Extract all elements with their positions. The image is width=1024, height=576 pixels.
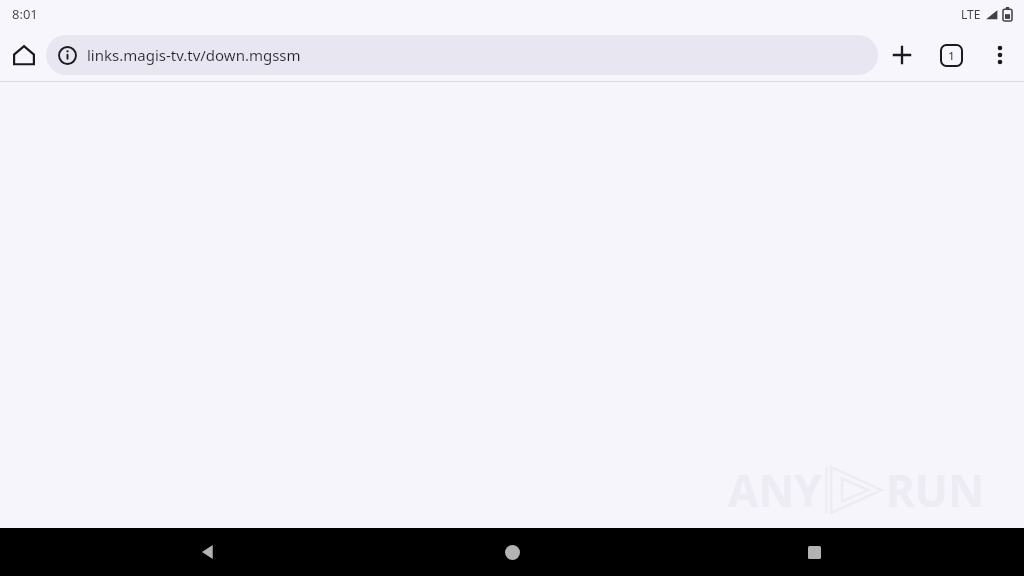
staticText: links.magis-tv.tv/down.mgssm (87, 45, 301, 65)
staticText: 8:01 (12, 5, 38, 23)
button[interactable]: New tab (884, 37, 920, 73)
button[interactable]: Home (6, 37, 42, 73)
staticText: LTE (961, 6, 981, 22)
button[interactable]: Home (488, 528, 536, 576)
staticText: 1 (948, 48, 955, 63)
button[interactable]: More options (982, 37, 1018, 73)
button[interactable]: Recent apps (790, 528, 838, 576)
staticText: RUN (886, 460, 984, 520)
button[interactable]: Back (183, 528, 231, 576)
button[interactable]: links.magis-tv.tv/down.mgssm (46, 35, 878, 75)
button[interactable]: Switch tabs, 1 tab (933, 37, 969, 73)
staticText: ANY (728, 460, 822, 520)
